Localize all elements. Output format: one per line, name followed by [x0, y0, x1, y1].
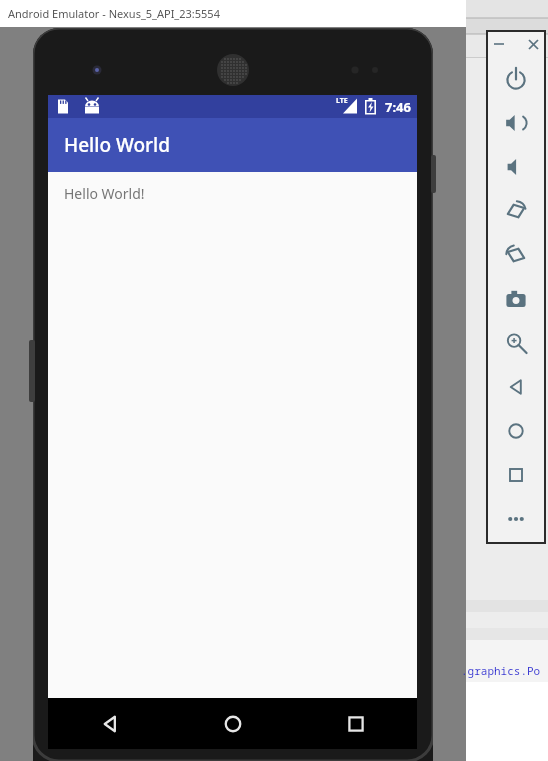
button[interactable]: Power [487, 57, 545, 101]
button[interactable]: Back [48, 698, 171, 749]
button[interactable]: Back [487, 365, 545, 409]
staticText: 7:46 [385, 98, 411, 116]
button[interactable]: Volume up [487, 101, 545, 145]
button[interactable]: Minimize [489, 34, 509, 54]
button[interactable]: Recent apps [294, 698, 417, 749]
button[interactable]: Overview [487, 453, 545, 497]
staticText: .graphics.Po [461, 663, 541, 678]
button[interactable]: Home [171, 698, 294, 749]
button[interactable]: Hello World [48, 118, 417, 172]
staticText: Android Emulator - Nexus_5_API_23:5554 [8, 6, 220, 21]
button[interactable]: Zoom [487, 321, 545, 365]
staticText: Hello World! [64, 184, 145, 203]
button[interactable]: Home [487, 409, 545, 453]
button[interactable]: Volume down [487, 145, 545, 189]
staticText: Hello World [64, 132, 170, 158]
button[interactable]: Take screenshot [487, 277, 545, 321]
button[interactable]: Rotate left [487, 189, 545, 233]
staticText: LTE [336, 96, 348, 106]
button[interactable]: Rotate right [487, 233, 545, 277]
button[interactable]: More options [487, 497, 545, 541]
button[interactable]: Close [523, 34, 543, 54]
